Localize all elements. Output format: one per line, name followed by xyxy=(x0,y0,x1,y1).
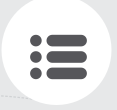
button[interactable]: List xyxy=(1,0,111,105)
